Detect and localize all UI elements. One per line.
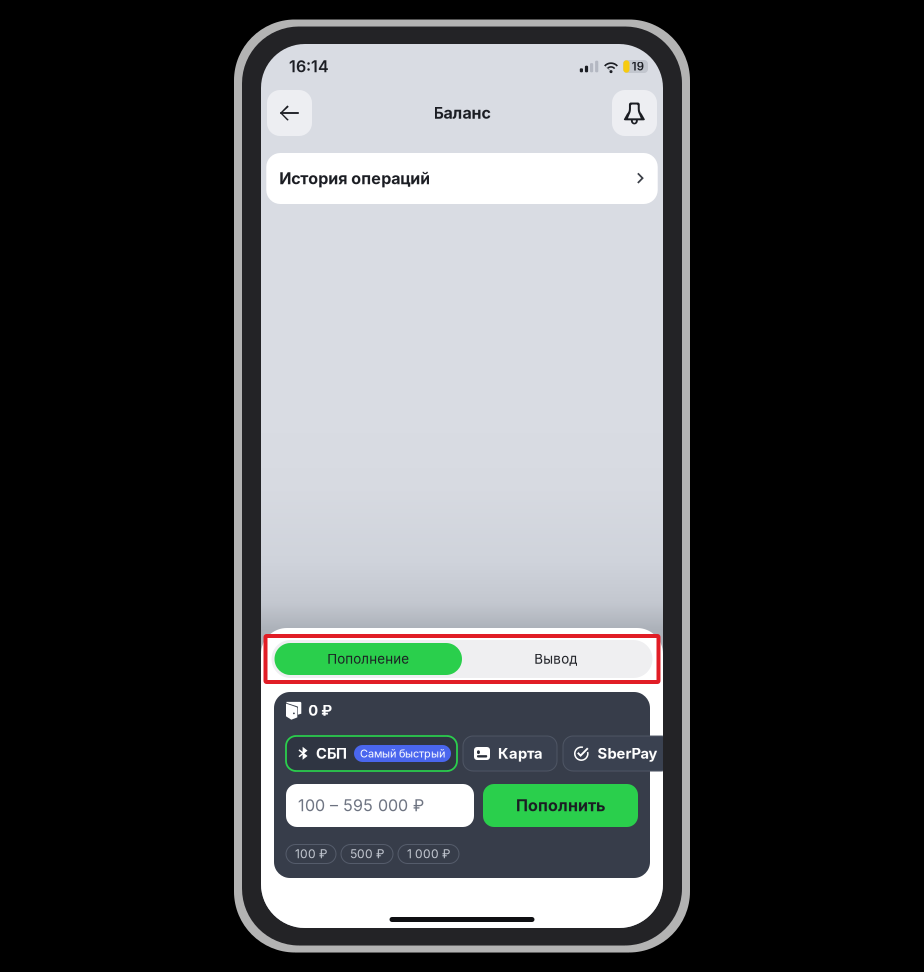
button[interactable]: Back: [267, 90, 312, 136]
staticText: 500 ₽: [350, 847, 384, 861]
staticText: Карта: [498, 745, 543, 762]
button[interactable]: 100 ₽: [286, 844, 336, 863]
staticText: SberPay: [597, 745, 657, 762]
staticText: Пополнить: [516, 796, 605, 815]
staticText: 1 000 ₽: [407, 847, 450, 861]
button[interactable]: Карта: [463, 736, 557, 771]
staticText: 100 – 595 000 ₽: [298, 796, 424, 815]
button[interactable]: 1 000 ₽: [398, 844, 459, 863]
button[interactable]: 500 ₽: [341, 844, 393, 863]
staticText: Вывод: [534, 651, 577, 667]
staticText: Баланс: [433, 103, 490, 123]
staticText: История операций: [279, 169, 430, 188]
staticText: Самый быстрый: [360, 747, 445, 760]
staticText: Пополнение: [327, 651, 409, 667]
button[interactable]: SberPay: [563, 736, 671, 771]
staticText: СБП: [316, 745, 347, 762]
staticText: 16:14: [289, 57, 329, 76]
button[interactable]: Пополнение: [274, 643, 462, 675]
staticText: 0 ₽: [308, 702, 332, 719]
button[interactable]: СБП: [286, 736, 457, 771]
staticText: 19: [632, 60, 644, 73]
button[interactable]: Вывод: [462, 643, 649, 675]
button[interactable]: Notifications: [612, 90, 657, 136]
button[interactable]: История операций: [266, 153, 658, 204]
button[interactable]: Пополнить: [483, 784, 638, 827]
staticText: 100 ₽: [295, 847, 327, 861]
